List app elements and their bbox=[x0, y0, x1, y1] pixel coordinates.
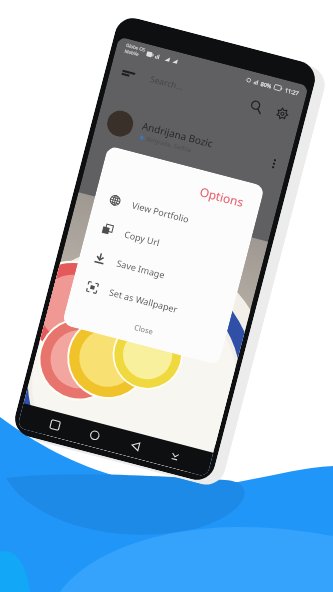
button[interactable]: Recents bbox=[49, 419, 61, 431]
button[interactable]: Copy Url bbox=[84, 209, 248, 279]
button[interactable]: Close bbox=[63, 296, 226, 361]
button[interactable]: Set as Wallpaper bbox=[69, 267, 233, 337]
staticText: 11:27 bbox=[284, 86, 300, 97]
button[interactable]: Settings bbox=[274, 106, 290, 122]
staticText: View Portfolio bbox=[131, 198, 191, 225]
staticText: Search... bbox=[149, 73, 185, 93]
button[interactable]: View Portfolio bbox=[92, 180, 256, 250]
staticText: 80% bbox=[260, 80, 272, 89]
button[interactable]: Home bbox=[89, 429, 101, 441]
staticText: Globe OS bbox=[125, 42, 146, 52]
staticText: Mobile bbox=[124, 47, 140, 57]
staticText: Save Image bbox=[116, 256, 167, 281]
staticText: Andrijana Bozic bbox=[141, 118, 215, 150]
staticText: Close bbox=[133, 322, 155, 337]
staticText: Set as Wallpaper bbox=[108, 286, 180, 315]
button[interactable]: Back bbox=[129, 440, 141, 452]
button[interactable]: More options bbox=[266, 153, 282, 174]
staticText: Belgrade, Serbia bbox=[145, 135, 193, 154]
staticText: Copy Url bbox=[123, 227, 162, 248]
staticText: Options bbox=[101, 158, 245, 210]
button[interactable]: Menu bbox=[121, 66, 136, 82]
button[interactable]: Search bbox=[248, 99, 264, 115]
button[interactable]: Save Image bbox=[76, 238, 241, 308]
button[interactable]: Hide keyboard bbox=[169, 450, 181, 462]
